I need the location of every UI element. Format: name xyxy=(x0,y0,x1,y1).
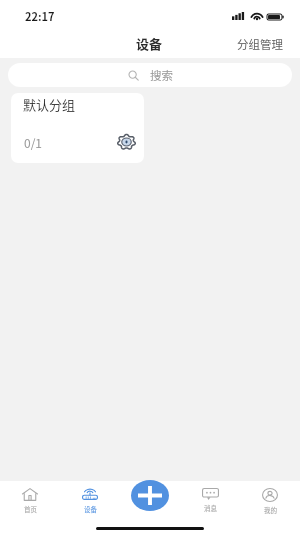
staticText: 默认分组 xyxy=(23,95,76,114)
button[interactable]: 设备 xyxy=(60,481,120,535)
staticText: 设备 xyxy=(84,504,97,513)
button[interactable]: 添加设备 xyxy=(131,480,169,511)
button[interactable]: 默认分组 xyxy=(11,93,144,163)
staticText: 0/1 xyxy=(24,134,43,151)
button[interactable]: 分组管理 xyxy=(231,32,289,57)
staticText: 搜索 xyxy=(150,67,173,84)
button[interactable]: 搜索 xyxy=(8,63,292,87)
button[interactable]: 首页 xyxy=(0,481,60,535)
staticText: 分组管理 xyxy=(237,36,283,53)
staticText: 首页 xyxy=(24,504,37,513)
button[interactable]: 我的 xyxy=(240,481,300,535)
staticText: 22:17 xyxy=(25,8,55,24)
staticText: 我的 xyxy=(264,505,277,514)
button[interactable]: 消息 xyxy=(180,481,240,535)
staticText: 消息 xyxy=(204,503,217,512)
button[interactable]: 分组设置 xyxy=(113,129,139,155)
staticText: 设备 xyxy=(136,34,163,53)
